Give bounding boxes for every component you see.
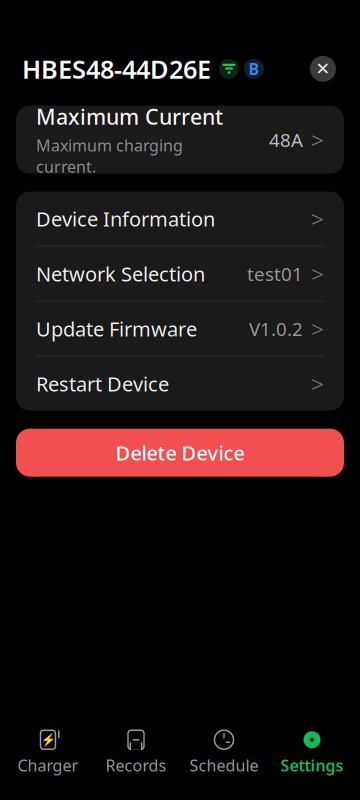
staticText: Schedule	[189, 755, 258, 776]
staticText: B	[248, 58, 259, 79]
button[interactable]: Schedule	[180, 723, 268, 782]
staticText: >	[311, 369, 324, 399]
staticText: Records	[105, 755, 166, 776]
staticText: 48A	[269, 127, 303, 152]
staticText: Delete Device	[115, 439, 244, 466]
staticText: >	[311, 259, 324, 289]
staticText: >	[311, 125, 324, 155]
staticText: Settings	[280, 755, 343, 776]
staticText: HBES48-44D26E	[22, 52, 211, 86]
staticText: Charger	[17, 755, 78, 776]
button[interactable]: ⚡	[4, 723, 92, 782]
staticText: Device Information	[36, 205, 215, 232]
button[interactable]: Update Firmware	[16, 302, 344, 356]
staticText: V1.0.2	[249, 316, 303, 341]
staticText: Update Firmware	[36, 315, 197, 342]
staticText: ⚡	[40, 733, 55, 747]
staticText: Restart Device	[36, 370, 169, 397]
button[interactable]: Maximum Current	[16, 106, 344, 174]
button[interactable]: Close	[308, 54, 338, 84]
staticText: Network Selection	[36, 260, 205, 287]
button[interactable]: Settings	[268, 723, 356, 782]
button[interactable]: Restart Device	[16, 357, 344, 411]
staticText: >	[311, 204, 324, 234]
staticText: Maximum Current	[36, 102, 223, 130]
staticText: test01	[247, 261, 303, 286]
button[interactable]: Device Information	[16, 192, 344, 246]
staticText: ✕	[315, 59, 330, 79]
staticText: Maximum charging current.	[36, 135, 183, 177]
button[interactable]: Delete Device	[16, 429, 344, 477]
button[interactable]: Records	[92, 723, 180, 782]
staticText: >	[311, 314, 324, 344]
button[interactable]: Network Selection	[16, 247, 344, 301]
